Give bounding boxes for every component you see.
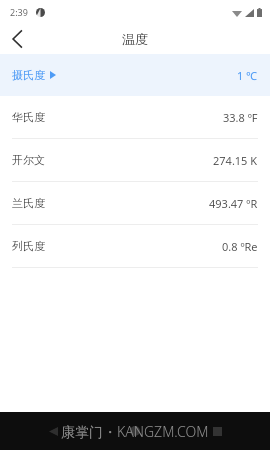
staticText: 康掌门・KANGZM.COM [61,422,209,441]
staticText: 列氏度 [12,239,45,253]
button[interactable]: Recents [204,418,230,444]
staticText: 33.8 ºF [223,110,258,125]
button[interactable]: Back [0,24,34,54]
button[interactable]: 列氏度 [0,225,270,267]
staticText: 温度 [122,31,148,47]
staticText: 0.8 ºRe [222,239,258,254]
button[interactable]: 摄氏度 [0,54,270,96]
staticText: 274.15 K [213,153,258,168]
staticText: 摄氏度 [12,68,45,82]
button[interactable]: Home [122,418,148,444]
staticText: 1 ℃ [237,68,258,83]
button[interactable]: Back [40,418,66,444]
button[interactable]: 兰氏度 [0,182,270,224]
staticText: 493.47 ºR [209,196,258,211]
button[interactable]: 华氏度 [0,96,270,138]
staticText: 华氏度 [12,110,45,124]
staticText: 开尔文 [12,153,45,167]
staticText: 2:39 [10,6,28,18]
button[interactable]: 开尔文 [0,139,270,181]
staticText: 兰氏度 [12,196,45,210]
